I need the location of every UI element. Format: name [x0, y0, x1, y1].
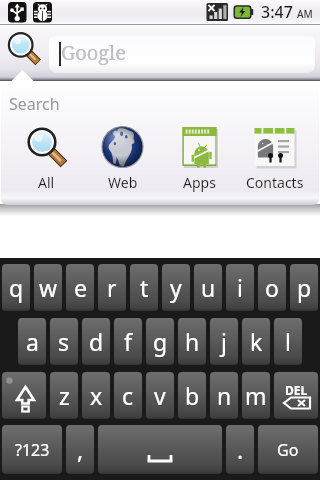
- button[interactable]: s: [50, 318, 78, 365]
- button[interactable]: m: [242, 372, 270, 419]
- staticText: o: [265, 272, 279, 303]
- staticText: g: [153, 326, 168, 357]
- staticText: j: [221, 326, 227, 357]
- button[interactable]: Apps: [161, 126, 237, 192]
- staticText: u: [201, 272, 216, 303]
- staticText: d: [89, 326, 104, 357]
- button[interactable]: l: [274, 318, 302, 365]
- staticText: c: [122, 380, 134, 411]
- staticText: v: [154, 380, 166, 411]
- staticText: r: [107, 272, 117, 303]
- button[interactable]: r: [98, 264, 126, 311]
- staticText: DEL: [285, 382, 308, 398]
- button[interactable]: j: [210, 318, 238, 365]
- button[interactable]: b: [178, 372, 206, 419]
- button[interactable]: k: [242, 318, 270, 365]
- button[interactable]: t: [130, 264, 158, 311]
- button[interactable]: .: [226, 425, 254, 474]
- button[interactable]: a: [18, 318, 46, 365]
- staticText: Go: [277, 439, 299, 461]
- button[interactable]: Space: [98, 425, 222, 474]
- button[interactable]: c: [114, 372, 142, 419]
- button[interactable]: g: [146, 318, 174, 365]
- button[interactable]: Google: [49, 34, 315, 73]
- button[interactable]: v: [146, 372, 174, 419]
- staticText: t: [140, 272, 149, 303]
- button[interactable]: i: [226, 264, 254, 311]
- staticText: 3:47: [261, 1, 293, 23]
- staticText: ,: [77, 434, 84, 465]
- staticText: p: [297, 272, 312, 303]
- staticText: Google: [61, 39, 127, 66]
- staticText: b: [185, 380, 200, 411]
- button[interactable]: Shift: [2, 372, 46, 419]
- button[interactable]: w: [34, 264, 62, 311]
- button[interactable]: o: [258, 264, 286, 311]
- staticText: s: [58, 326, 70, 357]
- button[interactable]: e: [66, 264, 94, 311]
- staticText: m: [245, 380, 267, 411]
- staticText: y: [170, 272, 182, 303]
- staticText: Apps: [183, 173, 216, 192]
- staticText: .: [237, 434, 244, 465]
- staticText: All: [38, 173, 55, 192]
- staticText: AM: [297, 7, 313, 21]
- staticText: Web: [108, 173, 138, 192]
- button[interactable]: All: [8, 126, 85, 192]
- button[interactable]: Contacts: [237, 126, 313, 192]
- staticText: e: [74, 272, 87, 303]
- button[interactable]: z: [50, 372, 78, 419]
- staticText: i: [237, 272, 243, 303]
- staticText: n: [217, 380, 232, 411]
- button[interactable]: Web: [85, 126, 161, 192]
- button[interactable]: y: [162, 264, 190, 311]
- staticText: f: [124, 326, 132, 357]
- staticText: h: [185, 326, 200, 357]
- button[interactable]: n: [210, 372, 238, 419]
- button[interactable]: x: [82, 372, 110, 419]
- button[interactable]: p: [290, 264, 318, 311]
- staticText: a: [26, 326, 39, 357]
- button[interactable]: q: [2, 264, 30, 311]
- staticText: x: [90, 380, 103, 411]
- staticText: ?123: [15, 439, 50, 461]
- button[interactable]: u: [194, 264, 222, 311]
- staticText: w: [39, 272, 58, 303]
- staticText: Search: [9, 93, 60, 115]
- staticText: q: [9, 272, 24, 303]
- staticText: z: [59, 380, 70, 411]
- staticText: l: [285, 326, 291, 357]
- staticText: Contacts: [246, 173, 304, 192]
- button[interactable]: f: [114, 318, 142, 365]
- button[interactable]: d: [82, 318, 110, 365]
- staticText: k: [250, 326, 263, 357]
- button[interactable]: h: [178, 318, 206, 365]
- button[interactable]: Delete: [274, 372, 318, 419]
- button[interactable]: ?123: [2, 425, 62, 474]
- button[interactable]: Go: [258, 425, 318, 474]
- button[interactable]: ,: [66, 425, 94, 474]
